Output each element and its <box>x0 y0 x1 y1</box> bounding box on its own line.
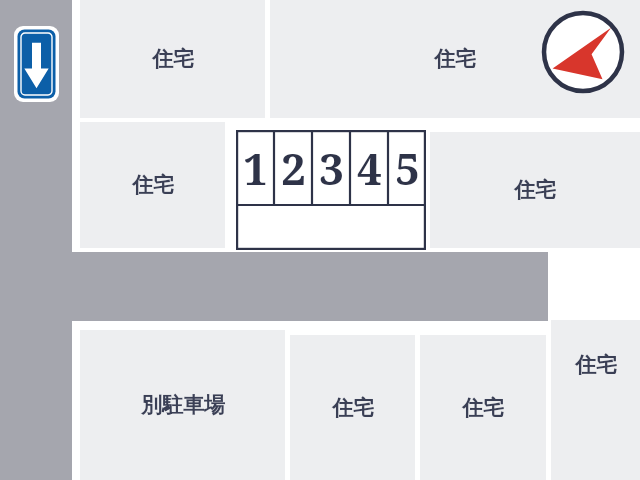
staticText: 2 <box>281 138 306 198</box>
button[interactable]: 住宅 <box>551 320 640 480</box>
staticText: 4 <box>357 138 382 198</box>
staticText: 住宅 <box>514 177 556 203</box>
staticText: 住宅 <box>332 395 374 421</box>
button[interactable]: 住宅 <box>270 0 640 118</box>
button[interactable]: 住宅 <box>420 335 546 480</box>
button[interactable]: Parking stalls 1 to 5 <box>236 130 426 250</box>
button[interactable]: Compass, north east <box>541 10 625 94</box>
staticText: 3 <box>319 138 344 198</box>
staticText: 住宅 <box>434 46 476 72</box>
staticText: 住宅 <box>575 352 617 378</box>
staticText: 住宅 <box>132 172 174 198</box>
button[interactable]: Direction sign, arrow down <box>14 26 59 102</box>
staticText: 1 <box>243 138 268 198</box>
button[interactable]: 住宅 <box>290 335 415 480</box>
button[interactable]: 住宅 <box>430 132 640 248</box>
button[interactable]: 住宅 <box>80 122 225 248</box>
button[interactable]: 住宅 <box>80 0 265 118</box>
staticText: 5 <box>395 138 420 198</box>
staticText: 住宅 <box>462 395 504 421</box>
button[interactable]: 別駐車場 <box>80 330 285 480</box>
staticText: 別駐車場 <box>141 392 225 418</box>
staticText: 住宅 <box>152 46 194 72</box>
